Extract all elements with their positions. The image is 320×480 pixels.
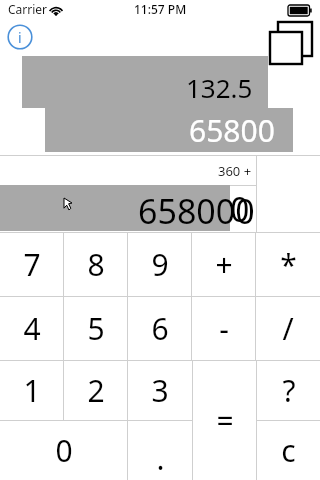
button[interactable]: Info xyxy=(7,24,33,50)
staticText: i xyxy=(18,28,22,47)
staticText: . xyxy=(156,438,165,479)
staticText: 658000 xyxy=(138,188,255,234)
staticText: 65800 xyxy=(189,110,275,151)
button[interactable]: 4 xyxy=(0,297,63,360)
button[interactable]: 3 xyxy=(128,361,192,420)
button[interactable]: / xyxy=(256,297,320,360)
button[interactable]: 1 xyxy=(0,361,63,420)
button[interactable]: c xyxy=(257,421,320,480)
staticText: 9 xyxy=(151,244,169,285)
staticText: 2 xyxy=(87,370,105,411)
staticText: = xyxy=(216,400,234,441)
staticText: 1 xyxy=(23,370,41,411)
button[interactable]: = xyxy=(193,361,256,480)
button[interactable]: + xyxy=(192,233,255,296)
staticText: 7 xyxy=(23,244,41,285)
staticText: 6 xyxy=(151,308,169,349)
staticText: ? xyxy=(282,370,296,411)
staticText: 3 xyxy=(151,370,169,411)
button[interactable]: 7 xyxy=(0,233,63,296)
staticText: - xyxy=(219,308,229,349)
staticText: c xyxy=(281,430,296,471)
staticText: 132.5 xyxy=(186,70,253,105)
button[interactable]: * xyxy=(256,233,320,296)
button[interactable]: 8 xyxy=(64,233,127,296)
staticText: 0 xyxy=(230,186,250,232)
button[interactable]: 0 xyxy=(0,421,127,480)
staticText: Carrier xyxy=(8,1,48,17)
staticText: 360 + xyxy=(218,162,252,180)
staticText: 0 xyxy=(55,430,73,471)
staticText: 11:57 PM xyxy=(134,1,187,17)
staticText: 8 xyxy=(87,244,105,285)
button[interactable]: ? xyxy=(257,361,320,420)
button[interactable]: 9 xyxy=(128,233,191,296)
button[interactable]: Windows xyxy=(266,18,316,66)
button[interactable]: 6 xyxy=(128,297,191,360)
staticText: + xyxy=(215,244,233,285)
button[interactable]: 2 xyxy=(64,361,127,420)
staticText: 4 xyxy=(23,308,41,349)
button[interactable]: 5 xyxy=(64,297,127,360)
button[interactable]: . xyxy=(128,421,192,480)
staticText: * xyxy=(280,244,297,285)
staticText: / xyxy=(282,308,294,349)
staticText: 5 xyxy=(87,308,105,349)
button[interactable]: - xyxy=(192,297,255,360)
